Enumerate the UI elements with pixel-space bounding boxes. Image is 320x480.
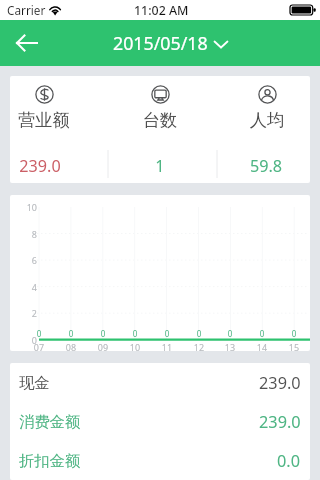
button[interactable]: 消费金额	[10, 402, 310, 441]
staticText: 营业额	[10, 109, 94, 131]
staticText: 12	[187, 341, 211, 351]
staticText: 台数	[110, 109, 210, 131]
staticText: 2	[10, 307, 37, 319]
staticText: 15	[282, 341, 306, 351]
staticText: 0	[27, 328, 51, 339]
staticText: 59.8	[216, 155, 310, 177]
staticText: 0	[250, 328, 274, 339]
staticText: 0	[282, 328, 306, 339]
staticText: 0	[123, 328, 147, 339]
staticText: 4	[10, 281, 37, 293]
button[interactable]: 营业额	[10, 76, 94, 177]
staticText: 13	[218, 341, 242, 351]
staticText: 14	[250, 341, 274, 351]
staticText: 1	[110, 155, 210, 177]
button[interactable]: 折扣金额	[10, 441, 310, 480]
staticText: 消费金额	[19, 412, 81, 431]
staticText: 11:02 AM	[134, 2, 189, 19]
staticText: 0	[187, 328, 211, 339]
button[interactable]: 台数	[110, 76, 210, 177]
button[interactable]: 现金	[10, 363, 310, 402]
staticText: 0	[91, 328, 115, 339]
staticText: 08	[59, 341, 83, 351]
staticText: 2015/05/18	[113, 31, 208, 55]
staticText: 0.0	[277, 450, 301, 472]
staticText: 239.0	[259, 411, 301, 433]
staticText: Carrier	[7, 2, 46, 18]
button[interactable]: 2015/05/18	[113, 31, 228, 55]
staticText: 11	[155, 341, 179, 351]
staticText: 0	[59, 328, 83, 339]
staticText: 07	[27, 341, 51, 351]
button[interactable]: 人均	[217, 76, 310, 177]
staticText: 人均	[217, 109, 310, 131]
staticText: 0	[10, 334, 37, 346]
staticText: 现金	[19, 373, 50, 392]
staticText: 8	[10, 228, 37, 240]
staticText: 239.0	[259, 372, 301, 394]
staticText: 0	[155, 328, 179, 339]
staticText: 10	[10, 201, 37, 213]
staticText: 折扣金额	[19, 451, 81, 470]
button[interactable]: Back	[0, 20, 52, 66]
staticText: 09	[91, 341, 115, 351]
staticText: 6	[10, 254, 37, 266]
staticText: 0	[218, 328, 242, 339]
staticText: 10	[123, 341, 147, 351]
staticText: 239.0	[10, 155, 90, 177]
